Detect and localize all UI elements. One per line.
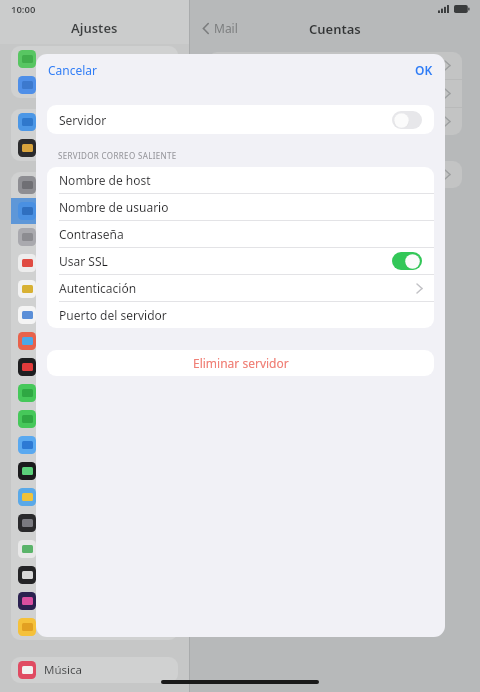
button[interactable]: OK xyxy=(409,57,439,83)
button[interactable] xyxy=(11,354,178,380)
button[interactable] xyxy=(11,250,178,276)
button[interactable] xyxy=(11,588,178,614)
staticText: SERVIDOR CORREO SALIENTE xyxy=(58,150,177,161)
button[interactable]: Puerto del servidor xyxy=(47,302,434,328)
button[interactable] xyxy=(11,328,178,354)
button[interactable] xyxy=(11,276,178,302)
button[interactable] xyxy=(11,432,178,458)
button[interactable]: Eliminar servidor xyxy=(47,350,434,376)
button[interactable] xyxy=(11,172,178,198)
button[interactable]: Usar SSL xyxy=(47,248,434,274)
button[interactable]: Nombre de usuario xyxy=(47,194,434,220)
button[interactable] xyxy=(208,161,462,188)
button[interactable] xyxy=(11,536,178,562)
button[interactable] xyxy=(11,302,178,328)
button[interactable] xyxy=(11,224,178,250)
staticText: Cuentas xyxy=(309,20,361,38)
button[interactable]: Mail xyxy=(200,18,240,38)
button[interactable]: Nombre de host xyxy=(47,167,434,193)
staticText: Ajustes xyxy=(71,19,118,37)
staticText: Puerto del servidor xyxy=(59,307,167,323)
staticText: Usar SSL xyxy=(59,253,108,269)
staticText: Nombre de host xyxy=(59,172,151,188)
staticText: OK xyxy=(415,62,433,78)
button[interactable]: Contraseña xyxy=(47,221,434,247)
button[interactable] xyxy=(208,108,462,135)
button[interactable] xyxy=(11,458,178,484)
staticText: Nombre de usuario xyxy=(59,199,169,215)
button[interactable] xyxy=(11,380,178,406)
button[interactable]: Desactivado xyxy=(392,111,422,129)
button[interactable] xyxy=(11,406,178,432)
button[interactable] xyxy=(11,562,178,588)
staticText: Servidor xyxy=(59,112,107,128)
button[interactable]: Casa xyxy=(11,614,178,640)
button[interactable] xyxy=(11,46,178,72)
staticText: Mail xyxy=(214,20,238,36)
button[interactable] xyxy=(11,510,178,536)
button[interactable]: Activado xyxy=(392,252,422,270)
button[interactable] xyxy=(208,80,462,107)
staticText: Eliminar servidor xyxy=(193,355,289,371)
staticText: Autenticación xyxy=(59,280,137,296)
button[interactable] xyxy=(11,135,178,161)
button[interactable] xyxy=(11,484,178,510)
button[interactable]: Cancelar xyxy=(42,57,104,83)
staticText: Música xyxy=(44,662,82,678)
button[interactable] xyxy=(11,109,178,135)
staticText: Contraseña xyxy=(59,226,124,242)
button[interactable] xyxy=(11,72,178,98)
button[interactable]: Música xyxy=(11,657,178,683)
button[interactable] xyxy=(208,52,462,79)
staticText: Cancelar xyxy=(48,62,98,78)
button[interactable]: Autenticación xyxy=(47,275,434,301)
staticText: 10:00 xyxy=(11,3,36,16)
button[interactable] xyxy=(11,198,178,224)
button[interactable]: Servidor xyxy=(47,105,434,134)
